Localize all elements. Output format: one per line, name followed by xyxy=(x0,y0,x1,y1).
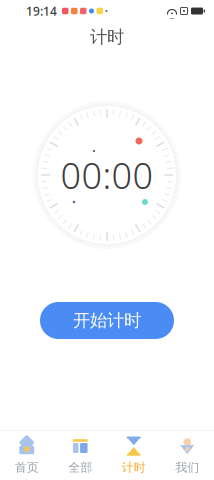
button[interactable]: 计时 xyxy=(107,431,160,480)
button[interactable]: 首页 xyxy=(0,431,53,480)
staticText: 我们 xyxy=(175,460,199,475)
staticText: 首页 xyxy=(15,460,39,475)
staticText: 19:14 xyxy=(26,3,57,19)
button[interactable]: 开始计时 xyxy=(40,302,174,339)
staticText: 开始计时 xyxy=(73,310,141,331)
staticText: 计时 xyxy=(90,26,124,48)
button[interactable]: 我们 xyxy=(160,431,214,480)
staticText: 计时 xyxy=(122,460,146,475)
staticText: 00:00 xyxy=(60,151,153,199)
staticText: 全部 xyxy=(68,460,92,475)
button[interactable]: 全部 xyxy=(53,431,107,480)
